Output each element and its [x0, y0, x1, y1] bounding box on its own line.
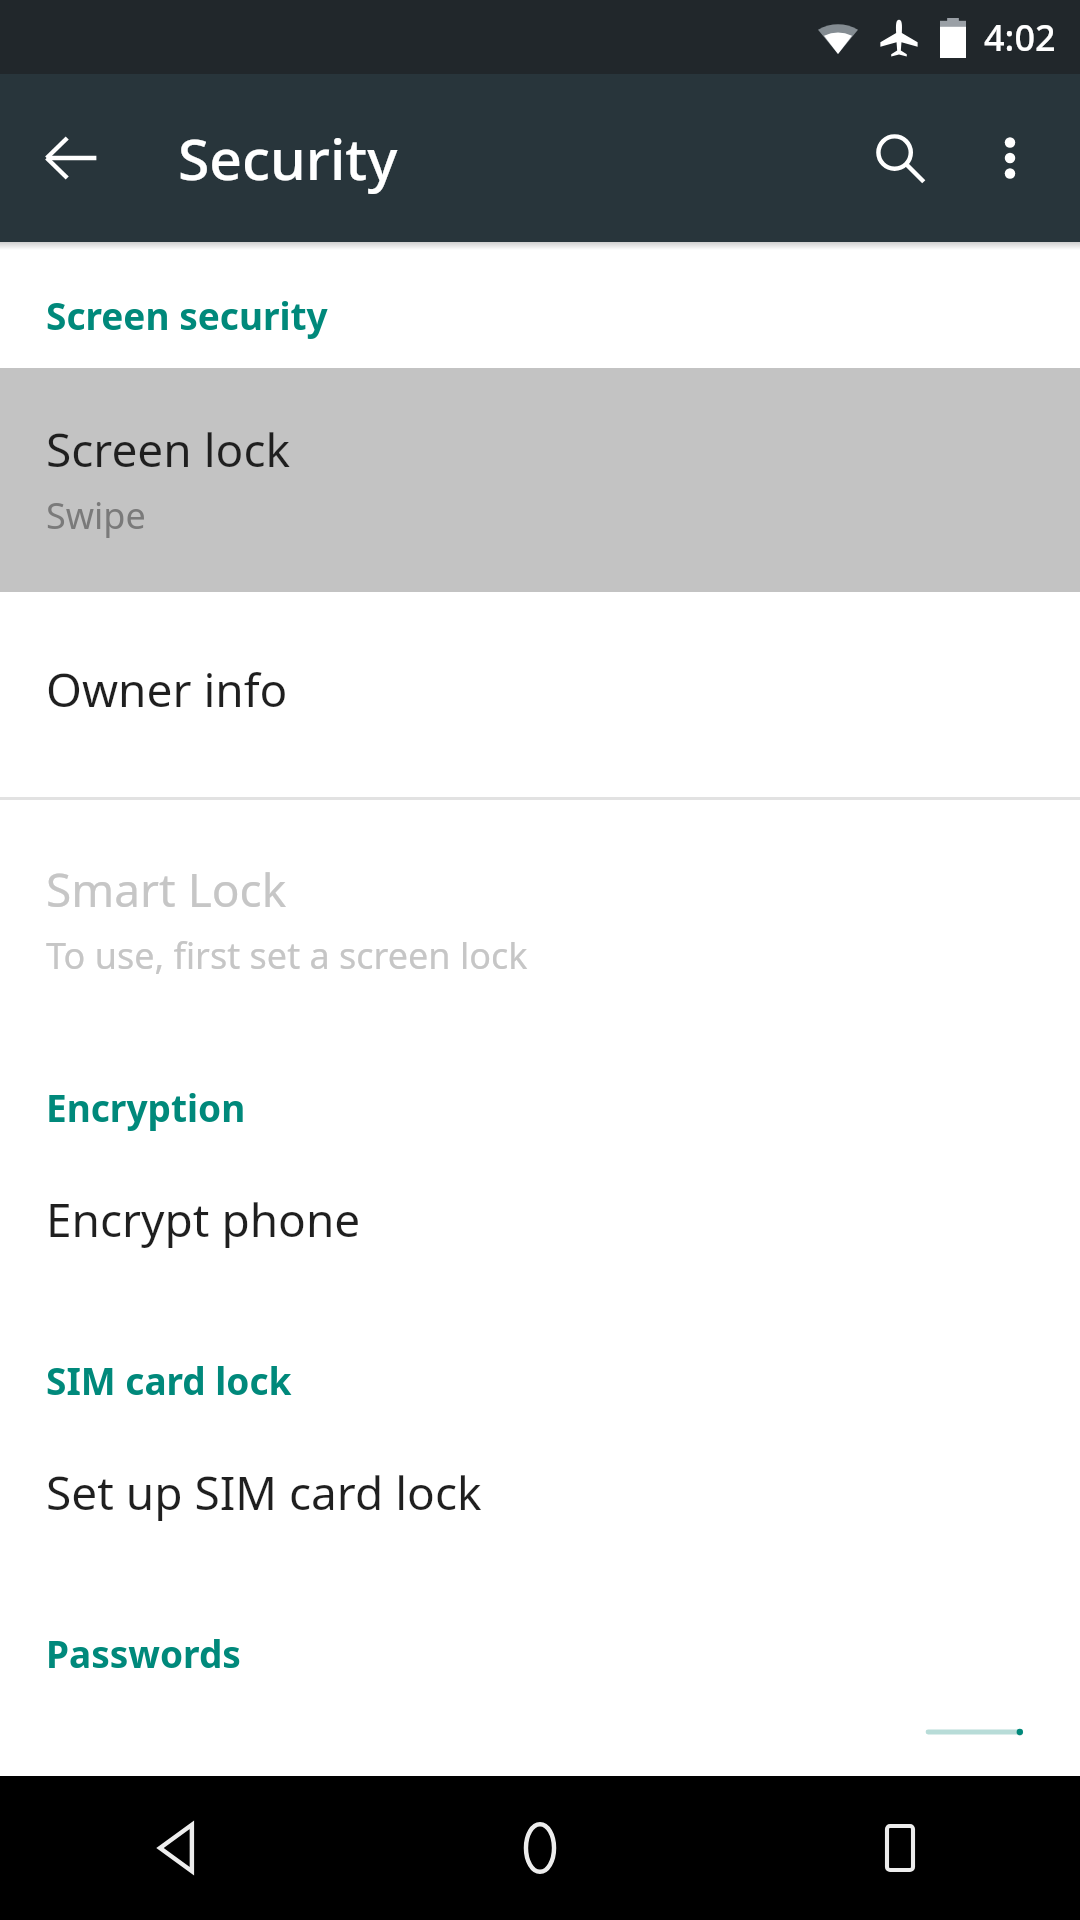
button[interactable]: Screen lock	[0, 368, 1080, 592]
staticText: To use, first set a screen lock	[46, 931, 528, 980]
staticText: Encrypt phone	[46, 1188, 361, 1251]
button[interactable]: Smart Lock	[0, 800, 1080, 1020]
staticText: Screen lock	[46, 418, 291, 481]
button[interactable]: Recent apps	[720, 1776, 1080, 1920]
button[interactable]: Owner info	[0, 592, 1080, 797]
button[interactable]: More options	[964, 112, 1056, 204]
button[interactable]: Search	[850, 108, 950, 208]
staticText: Owner info	[46, 658, 288, 721]
staticText: Swipe	[46, 491, 146, 540]
staticText: Encryption	[46, 1082, 246, 1132]
button[interactable]: Set up SIM card lock	[0, 1431, 1080, 1568]
staticText: Smart Lock	[46, 858, 287, 921]
staticText: Security	[178, 119, 398, 197]
staticText: Passwords	[46, 1628, 241, 1678]
staticText: 4:02	[984, 13, 1056, 62]
button[interactable]: Navigate up	[22, 109, 120, 207]
button[interactable]: Encrypt phone	[0, 1158, 1080, 1295]
button[interactable]: Back	[0, 1776, 360, 1920]
staticText: Set up SIM card lock	[46, 1461, 482, 1524]
button[interactable]: Home	[360, 1776, 720, 1920]
staticText: Screen security	[46, 290, 328, 340]
button[interactable]: Make passwords visible, on	[912, 1728, 1036, 1736]
staticText: SIM card lock	[46, 1355, 292, 1405]
button[interactable]: Make passwords visible	[0, 1702, 1080, 1776]
